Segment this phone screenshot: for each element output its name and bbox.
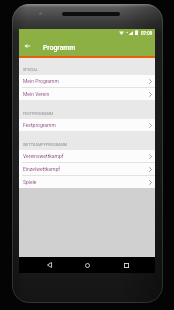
staticText: Vereinswettkampf xyxy=(23,153,149,159)
button[interactable]: Einzelwettkampf xyxy=(19,163,155,175)
staticText: Mein Verein xyxy=(23,91,149,97)
staticText: Spiele xyxy=(23,179,149,185)
staticText: WETTKAMPFPROGRAMM xyxy=(23,142,68,146)
button[interactable]: Festprogramm xyxy=(19,119,155,131)
staticText: FESTPROGRAMM xyxy=(23,111,54,115)
button[interactable]: Mein Verein xyxy=(19,88,155,100)
button[interactable]: Mein Programm xyxy=(19,75,155,87)
button[interactable]: Back xyxy=(21,40,33,52)
button[interactable]: Vereinswettkampf xyxy=(19,150,155,162)
staticText: Mein Programm xyxy=(23,78,149,84)
staticText: Einzelwettkampf xyxy=(23,166,149,172)
staticText: 07:09 xyxy=(141,31,153,36)
button[interactable]: Recent apps xyxy=(114,257,138,273)
staticText: Programm xyxy=(43,44,76,52)
button[interactable]: Home xyxy=(75,257,99,273)
button[interactable]: Spiele xyxy=(19,176,155,188)
button[interactable]: Back xyxy=(37,257,61,273)
staticText: SPEZIAL xyxy=(23,67,38,71)
staticText: Festprogramm xyxy=(23,122,149,128)
